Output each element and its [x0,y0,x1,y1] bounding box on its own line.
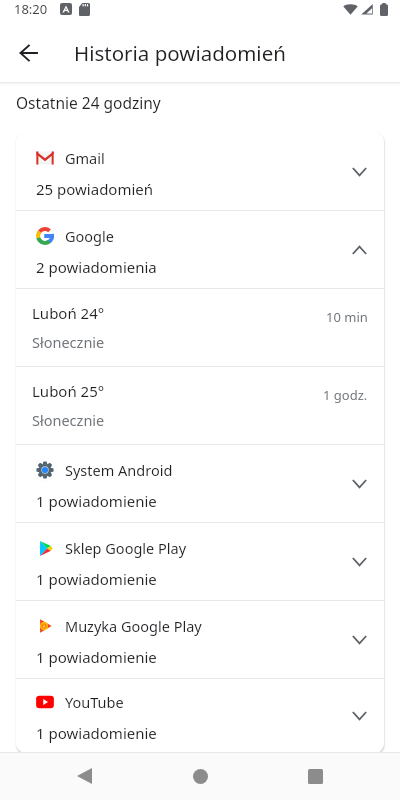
staticText: 1 powiadomienie [36,647,157,667]
button[interactable]: Back [0,28,57,82]
button[interactable]: YouTube [16,679,384,752]
staticText: Słonecznie [32,332,105,352]
staticText: 10 min [326,308,368,326]
staticText: Ostatnie 24 godziny [16,92,161,113]
button[interactable]: Gmail [16,133,384,210]
staticText: Sklep Google Play [65,538,187,558]
staticText: 1 powiadomienie [36,569,157,589]
staticText: Luboń 24° [32,303,105,323]
staticText: Google [65,226,114,246]
button[interactable]: Home [176,752,224,800]
staticText: 1 godz. [323,386,368,404]
staticText: Gmail [65,148,105,168]
button[interactable]: System Android [16,445,384,522]
staticText: 1 powiadomienie [36,723,157,743]
staticText: System Android [65,460,173,480]
button[interactable]: Luboń 25° [16,367,384,444]
button[interactable]: Google [16,211,384,288]
staticText: 2 powiadomienia [36,257,157,277]
button[interactable]: Recent apps [291,752,339,800]
button[interactable]: Luboń 24° [16,289,384,366]
staticText: Luboń 25° [32,381,105,401]
button[interactable]: Muzyka Google Play [16,601,384,678]
staticText: 1 powiadomienie [36,491,157,511]
staticText: Historia powiadomień [74,39,286,67]
button[interactable]: Sklep Google Play [16,523,384,600]
staticText: 25 powiadomień [36,179,154,199]
staticText: YouTube [65,692,124,712]
staticText: 18:20 [14,0,48,18]
staticText: Słonecznie [32,410,105,430]
button[interactable]: Back [60,752,108,800]
staticText: Muzyka Google Play [65,616,202,636]
